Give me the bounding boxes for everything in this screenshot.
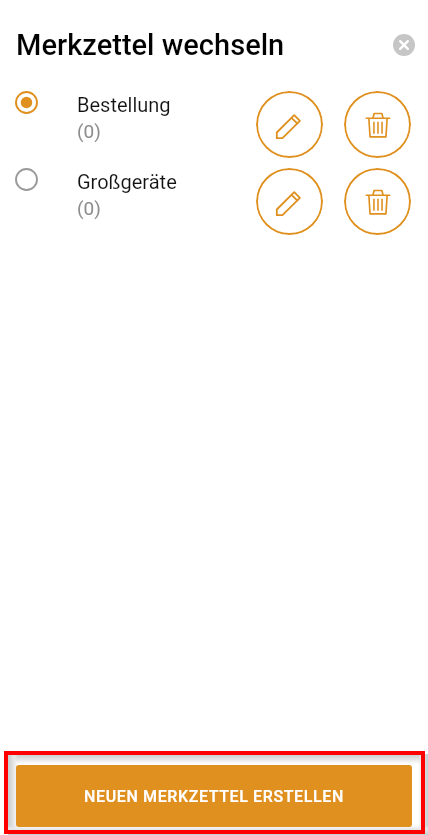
button[interactable]: NEUEN MERKZETTEL ERSTELLEN (16, 765, 412, 827)
staticText: Großgeräte (77, 170, 177, 193)
button[interactable]: Edit Großgeräte (256, 168, 323, 235)
button[interactable]: Delete Bestellung (344, 91, 411, 158)
staticText: Bestellung (77, 93, 171, 116)
staticText: NEUEN MERKZETTEL ERSTELLEN (84, 787, 344, 806)
button[interactable]: Großgeräte (8, 155, 248, 219)
staticText: (0) (77, 197, 101, 219)
button[interactable]: Edit Bestellung (256, 91, 323, 158)
staticText: Merkzettel wechseln (16, 28, 285, 62)
button[interactable]: Bestellung (8, 78, 248, 142)
staticText: (0) (77, 120, 101, 142)
button[interactable]: Delete Großgeräte (344, 168, 411, 235)
button[interactable]: Close (393, 34, 415, 56)
